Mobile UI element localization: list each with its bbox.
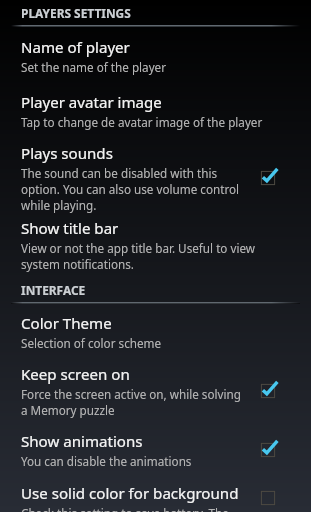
staticText: The sound can be disabled with this opti…: [21, 165, 242, 213]
button[interactable]: Checked: [254, 161, 282, 195]
button[interactable]: Plays sounds: [0, 143, 311, 213]
button[interactable]: Player avatar image: [0, 92, 311, 130]
staticText: Name of player: [21, 37, 130, 58]
staticText: Plays sounds: [21, 143, 113, 164]
staticText: Selection of color scheme: [21, 335, 162, 351]
staticText: PLAYERS SETTINGS: [21, 5, 131, 21]
button[interactable]: Keep screen on: [0, 364, 311, 418]
button[interactable]: Use solid color for background: [0, 483, 311, 512]
staticText: Keep screen on: [21, 364, 130, 385]
button[interactable]: Unchecked: [254, 483, 282, 512]
staticText: Player avatar image: [21, 92, 162, 113]
staticText: You can disable the animations: [21, 453, 192, 469]
staticText: INTERFACE: [21, 282, 86, 298]
staticText: Show title bar: [21, 218, 119, 239]
button[interactable]: Checked: [254, 374, 282, 408]
button[interactable]: Show animations: [0, 431, 311, 469]
staticText: Set the name of the player: [21, 59, 167, 75]
staticText: Show animations: [21, 431, 143, 452]
button[interactable]: Color Theme: [0, 313, 311, 351]
button[interactable]: Name of player: [0, 37, 311, 75]
button[interactable]: Checked: [254, 433, 282, 467]
button[interactable]: Show title bar: [0, 218, 311, 272]
staticText: Use solid color for background: [21, 483, 239, 504]
staticText: Color Theme: [21, 313, 112, 334]
staticText: Force the screen active on, while solvin…: [21, 386, 242, 418]
staticText: Tap to change de avatar image of the pla…: [21, 114, 263, 130]
staticText: View or not the app title bar. Useful to…: [21, 240, 267, 272]
staticText: Check this setting to save battery. The …: [21, 505, 242, 512]
